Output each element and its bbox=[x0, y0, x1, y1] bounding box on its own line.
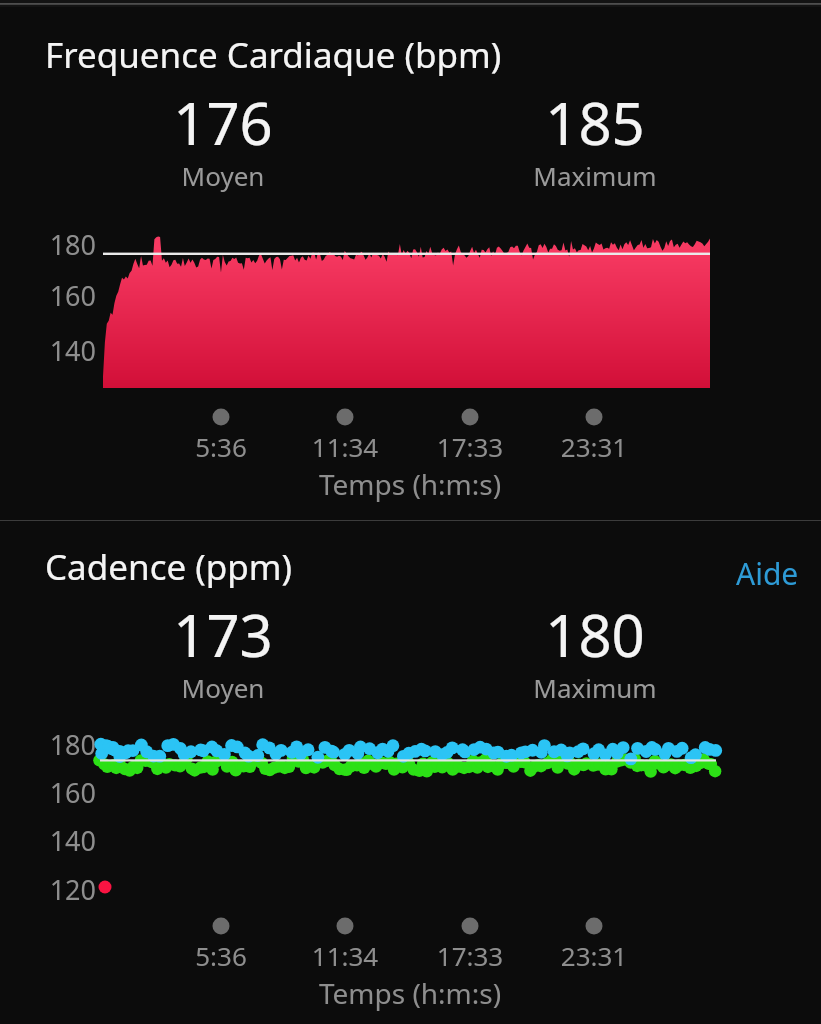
staticText: Moyen bbox=[103, 670, 343, 705]
staticText: 17:33 bbox=[400, 938, 540, 973]
staticText: Moyen bbox=[103, 158, 343, 193]
staticText: 23:31 bbox=[524, 938, 664, 973]
staticText: 120 bbox=[24, 871, 96, 908]
staticText: 11:34 bbox=[275, 938, 415, 973]
button[interactable]: Aide bbox=[726, 547, 809, 600]
staticText: 185 bbox=[475, 83, 715, 162]
staticText: Maximum bbox=[475, 670, 715, 705]
staticText: 11:34 bbox=[275, 429, 415, 464]
staticText: 23:31 bbox=[524, 429, 664, 464]
staticText: Cadence (ppm) bbox=[45, 543, 293, 591]
staticText: Maximum bbox=[475, 158, 715, 193]
staticText: 180 bbox=[24, 226, 96, 263]
staticText: 5:36 bbox=[151, 938, 291, 973]
staticText: 180 bbox=[24, 726, 96, 763]
staticText: 160 bbox=[24, 774, 96, 811]
staticText: 180 bbox=[475, 595, 715, 674]
staticText: 173 bbox=[103, 595, 343, 674]
staticText: Frequence Cardiaque (bpm) bbox=[45, 31, 502, 79]
staticText: 176 bbox=[103, 83, 343, 162]
staticText: 5:36 bbox=[151, 429, 291, 464]
staticText: 140 bbox=[24, 822, 96, 859]
staticText: Temps (h:m:s) bbox=[200, 974, 620, 1012]
staticText: 17:33 bbox=[400, 429, 540, 464]
staticText: 140 bbox=[24, 332, 96, 369]
staticText: Temps (h:m:s) bbox=[200, 465, 620, 503]
staticText: 160 bbox=[24, 277, 96, 314]
staticText: Aide bbox=[736, 553, 799, 594]
